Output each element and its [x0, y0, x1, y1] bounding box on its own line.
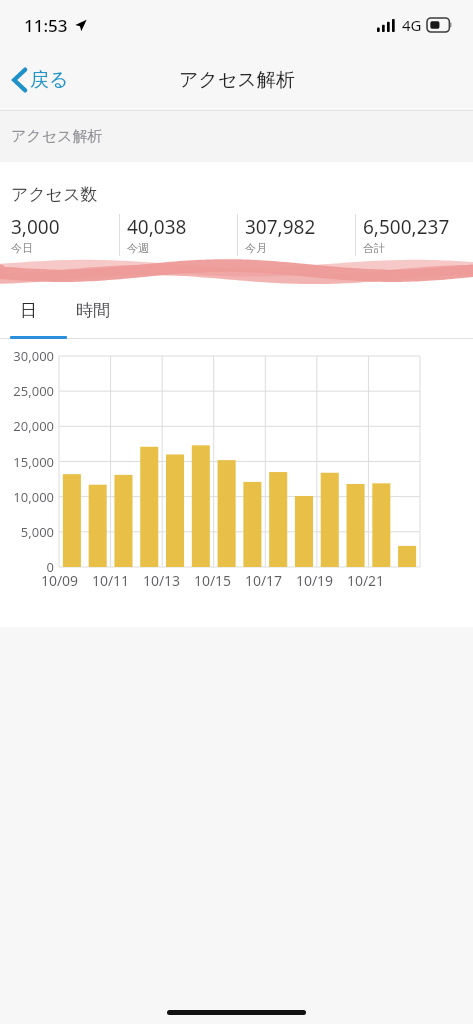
- staticText: 戻る: [30, 68, 69, 92]
- staticText: 今月: [245, 241, 267, 255]
- staticText: アクセス解析: [11, 127, 103, 146]
- staticText: 今週: [127, 241, 149, 255]
- button[interactable]: 戻る: [0, 59, 81, 101]
- staticText: 3,000: [11, 214, 60, 240]
- staticText: 307,982: [245, 214, 316, 240]
- staticText: 6,500,237: [363, 214, 450, 240]
- staticText: 10/09: [34, 571, 85, 590]
- staticText: 今日: [11, 241, 33, 255]
- button[interactable]: 日: [0, 294, 57, 326]
- staticText: 合計: [363, 241, 385, 255]
- staticText: 20,000: [0, 417, 54, 435]
- staticText: 10/19: [289, 571, 340, 590]
- staticText: 時間: [76, 300, 110, 321]
- staticText: アクセス解析: [179, 68, 295, 92]
- staticText: 10,000: [0, 488, 54, 506]
- staticText: 25,000: [0, 382, 54, 400]
- staticText: 30,000: [0, 347, 54, 365]
- staticText: 0: [0, 558, 54, 576]
- staticText: 40,038: [127, 214, 187, 240]
- staticText: 10/11: [85, 571, 136, 590]
- staticText: 15,000: [0, 453, 54, 471]
- staticText: 10/21: [340, 571, 391, 590]
- staticText: 11:53: [24, 14, 68, 37]
- staticText: 10/13: [136, 571, 187, 590]
- button[interactable]: 時間: [57, 294, 129, 326]
- staticText: 5,000: [0, 523, 54, 541]
- staticText: 10/15: [187, 571, 238, 590]
- staticText: アクセス数: [11, 184, 98, 205]
- staticText: 4G: [402, 15, 422, 35]
- staticText: 10/17: [238, 571, 289, 590]
- staticText: 日: [20, 300, 37, 321]
